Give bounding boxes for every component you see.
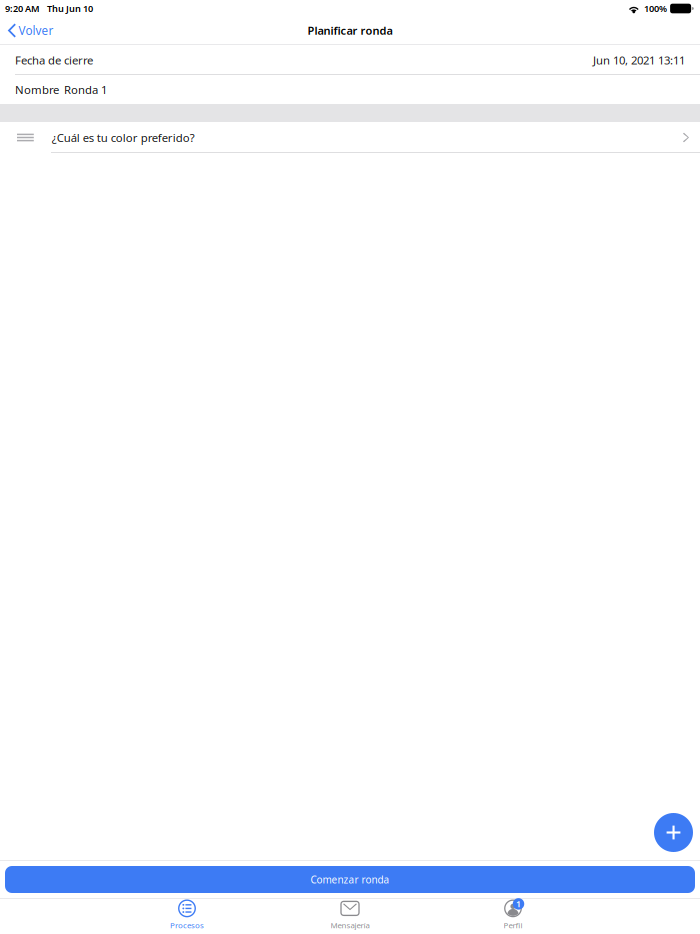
staticText: Volver [18,22,53,38]
staticText: 1 [516,898,521,910]
button[interactable]: Volver [0,17,61,43]
button[interactable]: ¿Cuál es tu color preferido? [0,122,700,153]
staticText: Comenzar ronda [310,873,389,886]
staticText: Planificar ronda [307,23,392,38]
staticText: ¿Cuál es tu color preferido? [52,130,195,145]
button[interactable]: Add question [654,813,693,852]
staticText: Ronda 1 [64,82,107,97]
staticText: Thu Jun 10 [47,2,93,15]
button[interactable]: Mensajería [268,899,431,934]
staticText: Perfil [503,920,522,931]
staticText: Jun 10, 2021 13:11 [593,52,685,68]
staticText: 9:20 AM [5,2,40,15]
button[interactable]: 1 [431,899,594,934]
button[interactable]: Fecha de cierre [0,45,700,75]
staticText: Procesos [170,920,204,931]
staticText: Fecha de cierre [15,52,93,68]
button[interactable]: Comenzar ronda [5,866,695,893]
staticText: Mensajería [330,920,369,931]
staticText: 100% [644,2,667,15]
button[interactable]: Procesos [105,899,268,934]
staticText: Nombre [15,82,59,97]
